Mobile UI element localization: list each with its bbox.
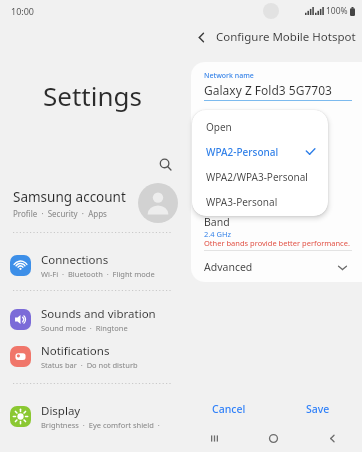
button[interactable]: Recents xyxy=(185,424,244,452)
staticText: 10:00 xyxy=(11,5,35,17)
staticText: Band xyxy=(204,215,230,229)
staticText: Settings xyxy=(43,78,142,113)
button[interactable]: Back xyxy=(190,26,212,48)
button[interactable]: Connections xyxy=(0,245,185,285)
button[interactable]: Advanced xyxy=(191,254,362,280)
button[interactable]: Display xyxy=(0,396,185,436)
staticText: Sounds and vibration xyxy=(41,306,156,322)
staticText: Open xyxy=(206,120,316,134)
button[interactable]: Save xyxy=(273,398,362,420)
staticText: WPA3-Personal xyxy=(206,195,316,209)
staticText: 100% xyxy=(326,5,348,17)
staticText: Configure Mobile Hotspot xyxy=(216,29,356,45)
button[interactable]: WPA2-Personal xyxy=(192,139,328,164)
staticText: Profile · Security · Apps xyxy=(13,208,107,219)
button[interactable]: Cancel xyxy=(185,398,273,420)
button[interactable]: Notifications xyxy=(0,336,185,376)
button[interactable]: Open xyxy=(192,114,328,139)
staticText: Other bands provide better performance. xyxy=(204,238,350,248)
staticText: Save xyxy=(306,402,330,416)
staticText: Sound mode · Ringtone xyxy=(41,323,128,333)
button[interactable]: Home xyxy=(244,424,303,452)
staticText: Wi-Fi · Bluetooth · Flight mode xyxy=(41,269,155,279)
staticText: Network name xyxy=(204,71,254,81)
button[interactable]: Samsung account xyxy=(0,182,185,224)
staticText: Display xyxy=(41,403,81,419)
staticText: Notifications xyxy=(41,343,110,359)
staticText: Brightness · Eye comfort shield · xyxy=(41,420,160,430)
button[interactable]: WPA2/WPA3-Personal xyxy=(192,164,328,189)
button[interactable]: Search xyxy=(152,151,178,177)
staticText: Connections xyxy=(41,252,109,268)
staticText: Galaxy Z Fold3 5G7703 xyxy=(204,82,332,98)
staticText: Advanced xyxy=(204,260,337,274)
button[interactable]: Back xyxy=(303,424,362,452)
button[interactable]: Sounds and vibration xyxy=(0,299,185,339)
staticText: WPA2/WPA3-Personal xyxy=(206,170,316,184)
staticText: WPA2-Personal xyxy=(206,145,305,159)
button[interactable]: WPA3-Personal xyxy=(192,189,328,214)
staticText: Cancel xyxy=(212,402,246,416)
staticText: 2.4 GHz xyxy=(204,229,232,239)
staticText: Samsung account xyxy=(13,188,126,206)
staticText: Status bar · Do not disturb xyxy=(41,360,138,370)
